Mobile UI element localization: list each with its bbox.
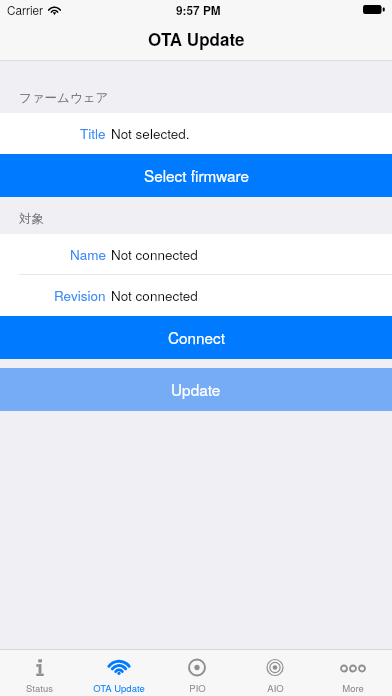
button[interactable]: Connect bbox=[0, 316, 392, 359]
staticText: More bbox=[342, 681, 364, 695]
staticText: Revision bbox=[54, 286, 106, 305]
staticText: Not selected. bbox=[111, 124, 190, 143]
staticText: Not connected bbox=[111, 245, 198, 264]
staticText: ファームウェア bbox=[19, 90, 109, 106]
button[interactable]: Select firmware bbox=[0, 154, 392, 197]
staticText: OTA Update bbox=[93, 681, 145, 695]
staticText: Name bbox=[70, 245, 106, 264]
staticText: 対象 bbox=[19, 211, 44, 227]
staticText: Title bbox=[80, 124, 106, 143]
other: Battery bbox=[363, 5, 385, 14]
staticText: Carrier bbox=[7, 1, 44, 18]
staticText: AIO bbox=[267, 681, 284, 695]
staticText: Update bbox=[171, 378, 221, 400]
button[interactable]: More bbox=[314, 650, 392, 696]
button[interactable]: AIO bbox=[236, 650, 314, 696]
button[interactable]: OTA Update bbox=[79, 650, 158, 696]
button[interactable]: Status bbox=[0, 650, 79, 696]
button[interactable]: Title bbox=[0, 113, 392, 154]
staticText: Not connected bbox=[111, 286, 198, 305]
staticText: 9:57 PM bbox=[176, 2, 221, 19]
staticText: PIO bbox=[189, 681, 206, 695]
staticText: OTA Update bbox=[148, 27, 245, 51]
staticText: Connect bbox=[168, 326, 225, 348]
button[interactable]: Name bbox=[0, 234, 392, 275]
button[interactable]: Update bbox=[0, 368, 392, 411]
staticText: Select firmware bbox=[144, 164, 249, 186]
button[interactable]: Revision bbox=[0, 275, 392, 316]
button[interactable]: PIO bbox=[158, 650, 236, 696]
staticText: Status bbox=[26, 681, 53, 695]
